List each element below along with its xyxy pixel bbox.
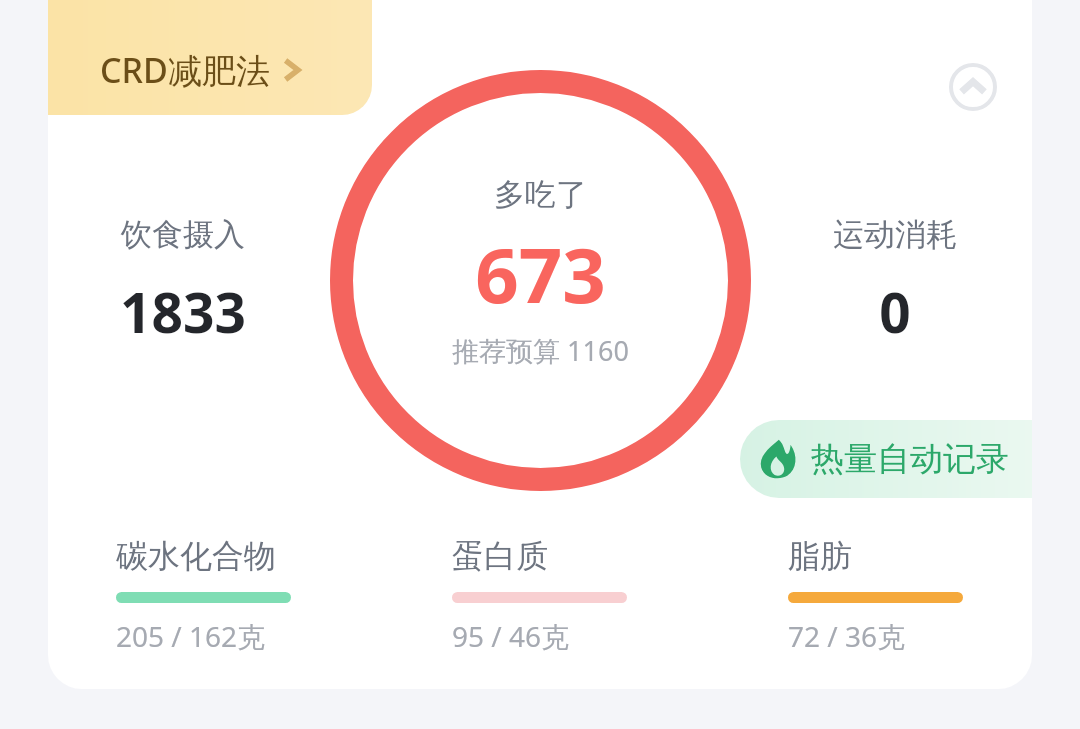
button[interactable]: 碳水化合物: [116, 536, 291, 655]
staticText: CRD减肥法: [100, 47, 270, 93]
staticText: 饮食摄入: [121, 215, 245, 254]
staticText: 72 / 36克: [788, 617, 906, 655]
button[interactable]: Collapse: [945, 59, 1001, 115]
button[interactable]: CRD减肥法: [48, 0, 372, 115]
staticText: 运动消耗: [833, 215, 957, 254]
button[interactable]: 蛋白质: [452, 536, 627, 655]
button[interactable]: 热量自动记录: [740, 420, 1032, 498]
button[interactable]: 运动消耗: [785, 215, 1005, 349]
button[interactable]: 饮食摄入: [73, 215, 293, 349]
staticText: 蛋白质: [452, 536, 548, 576]
staticText: 0: [879, 274, 911, 349]
staticText: 1833: [120, 274, 246, 349]
staticText: 多吃了: [494, 175, 587, 214]
staticText: 热量自动记录: [811, 438, 1009, 480]
staticText: 脂肪: [788, 536, 852, 576]
staticText: 碳水化合物: [116, 536, 276, 576]
button[interactable]: 脂肪: [788, 536, 963, 655]
staticText: 673: [475, 222, 606, 326]
staticText: 205 / 162克: [116, 617, 266, 655]
staticText: 95 / 46克: [452, 617, 570, 655]
staticText: 推荐预算 1160: [452, 332, 629, 369]
